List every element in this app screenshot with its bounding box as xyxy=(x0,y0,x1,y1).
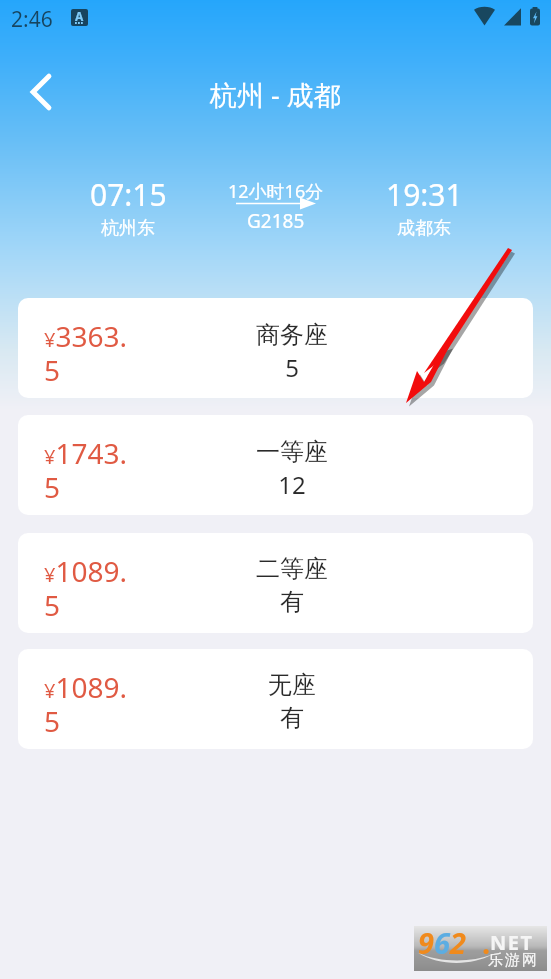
button[interactable]: ¥1743.5 xyxy=(18,415,533,515)
staticText: 有 xyxy=(280,703,304,733)
staticText: 07:15 xyxy=(90,174,167,215)
button[interactable]: Back xyxy=(13,64,69,120)
button[interactable]: ¥3363.5 xyxy=(18,298,533,398)
button[interactable]: ¥1089.5 xyxy=(18,533,533,633)
staticText: 6 xyxy=(434,923,450,962)
staticText: 杭州 - 成都 xyxy=(210,76,341,113)
staticText: G2185 xyxy=(247,208,305,234)
staticText: 12 xyxy=(278,468,306,501)
staticText: ¥1089.5 xyxy=(44,552,140,625)
staticText: 有 xyxy=(280,587,304,617)
staticText: 商务座 xyxy=(256,320,328,350)
staticText: 12小时16分 xyxy=(228,179,324,204)
staticText: 杭州东 xyxy=(101,217,155,240)
staticText: 无座 xyxy=(268,670,316,700)
staticText: . xyxy=(482,923,491,962)
staticText: 9 xyxy=(418,923,434,962)
staticText: 二等座 xyxy=(256,554,328,584)
staticText: ¥1089.5 xyxy=(44,668,140,741)
staticText: NET xyxy=(490,929,534,956)
staticText: 2 xyxy=(450,923,466,962)
button[interactable]: ¥1089.5 xyxy=(18,649,533,749)
staticText: 成都东 xyxy=(397,217,451,240)
staticText: ¥3363.5 xyxy=(44,317,140,390)
staticText: 乐游网 xyxy=(487,951,538,970)
staticText: 5 xyxy=(285,351,299,384)
staticText: 一等座 xyxy=(256,437,328,467)
staticText: A xyxy=(75,9,84,24)
staticText: 19:31 xyxy=(386,174,463,215)
staticText: 2:46 xyxy=(11,5,53,34)
staticText: ¥1743.5 xyxy=(44,434,140,507)
